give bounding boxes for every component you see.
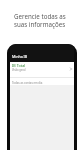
staticText: IB Total [12, 63, 26, 68]
button[interactable]: IB Total [10, 62, 74, 77]
staticText: suas informações [14, 20, 66, 28]
other: Abrir IB Total [69, 67, 73, 71]
staticText: Visão geral [12, 68, 26, 72]
staticText: Minha IB [12, 54, 28, 59]
staticText: Gerencie todas as [14, 12, 66, 20]
button[interactable]: Todas as contas em dia [10, 78, 74, 85]
staticText: Todas as contas em dia [12, 81, 43, 85]
